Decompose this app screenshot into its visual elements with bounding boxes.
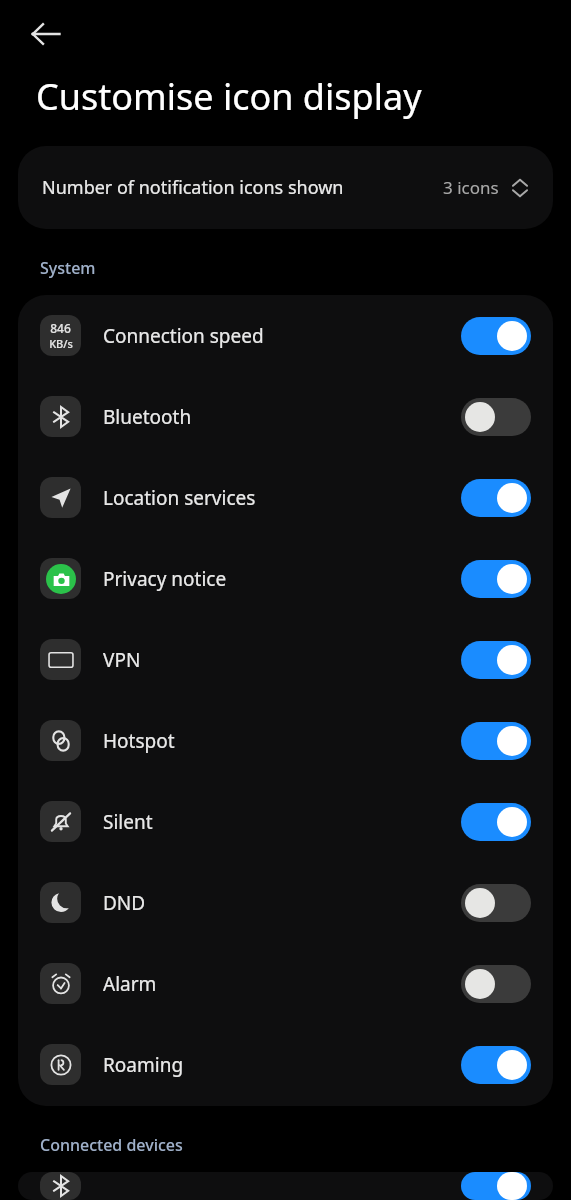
button[interactable]: Off bbox=[461, 884, 531, 922]
button[interactable]: Location services bbox=[18, 457, 553, 538]
staticText: 846 bbox=[50, 320, 71, 336]
staticText: KB/s bbox=[49, 336, 73, 351]
button[interactable]: Back bbox=[18, 6, 74, 62]
button[interactable]: On bbox=[461, 641, 531, 679]
button[interactable]: On bbox=[461, 317, 531, 355]
staticText: Silent bbox=[103, 809, 461, 835]
staticText: Number of notification icons shown bbox=[42, 175, 443, 200]
button[interactable]: Silent bbox=[18, 781, 553, 862]
button[interactable]: On bbox=[461, 560, 531, 598]
staticText: Privacy notice bbox=[103, 566, 461, 592]
button[interactable]: Off bbox=[461, 398, 531, 436]
button[interactable]: 846 bbox=[18, 295, 553, 376]
button[interactable]: Alarm bbox=[18, 943, 553, 1024]
button[interactable]: Bluetooth bbox=[18, 376, 553, 457]
staticText: Alarm bbox=[103, 971, 461, 997]
button[interactable]: On bbox=[461, 1046, 531, 1084]
staticText: System bbox=[40, 257, 96, 279]
staticText: DND bbox=[103, 890, 461, 916]
staticText: VPN bbox=[103, 647, 461, 673]
staticText: Hotspot bbox=[103, 728, 461, 754]
button[interactable]: DND bbox=[18, 862, 553, 943]
staticText: Connected devices bbox=[40, 1134, 183, 1156]
staticText: Bluetooth bbox=[103, 404, 461, 430]
button[interactable]: Privacy notice bbox=[18, 538, 553, 619]
button[interactable]: Number of notification icons shown bbox=[18, 146, 553, 229]
button[interactable]: Off bbox=[461, 965, 531, 1003]
staticText: 3 icons bbox=[443, 176, 499, 199]
button[interactable]: On bbox=[461, 1172, 531, 1200]
button[interactable]: On bbox=[461, 479, 531, 517]
button[interactable]: Hotspot bbox=[18, 700, 553, 781]
staticText: Customise icon display bbox=[36, 72, 422, 121]
staticText: Roaming bbox=[103, 1052, 461, 1078]
staticText: Connection speed bbox=[103, 323, 461, 349]
button[interactable]: On bbox=[461, 722, 531, 760]
button[interactable]: On bbox=[18, 1172, 553, 1200]
button[interactable]: VPN bbox=[18, 619, 553, 700]
staticText: Location services bbox=[103, 485, 461, 511]
button[interactable]: Roaming bbox=[18, 1024, 553, 1105]
button[interactable]: On bbox=[461, 803, 531, 841]
